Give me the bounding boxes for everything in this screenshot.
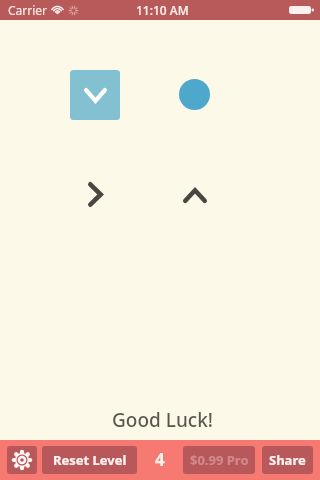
button[interactable]: Ball (179, 79, 210, 110)
button[interactable]: Reset Level (42, 446, 137, 474)
staticText: Good Luck! (112, 407, 213, 433)
staticText: $0.99 Pro (190, 451, 249, 469)
staticText: Carrier (8, 2, 48, 18)
staticText: Reset Level (53, 451, 127, 469)
staticText: 11:10 AM (136, 2, 189, 18)
button[interactable]: Settings (7, 446, 37, 474)
button[interactable]: Share (262, 446, 313, 474)
button[interactable]: $0.99 Pro (183, 446, 255, 474)
button[interactable]: Down tile (70, 70, 120, 120)
staticText: 4 (155, 448, 165, 471)
staticText: Share (269, 451, 306, 469)
